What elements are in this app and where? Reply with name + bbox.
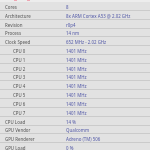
staticText: CPU 3 bbox=[13, 74, 26, 80]
button[interactable]: CPU Load bbox=[0, 117, 150, 126]
staticText: 1401 MHz bbox=[66, 66, 87, 72]
button[interactable]: CPU 3 bbox=[0, 72, 150, 81]
staticText: Adreno (TM) 506 bbox=[66, 136, 101, 142]
button[interactable]: Revision bbox=[0, 20, 150, 29]
staticText: 14 % bbox=[66, 119, 76, 125]
staticText: Qualcomm bbox=[66, 127, 90, 133]
button[interactable]: Process bbox=[0, 28, 150, 37]
staticText: 1401 MHz bbox=[66, 110, 87, 116]
staticText: CPU 2 bbox=[13, 66, 26, 72]
button[interactable]: CPU 2 bbox=[0, 64, 150, 73]
button[interactable]: CPU 6 bbox=[0, 99, 150, 108]
staticText: 1401 MHz bbox=[66, 83, 87, 89]
button[interactable]: GPU Load bbox=[0, 143, 150, 150]
button[interactable]: GPU Renderer bbox=[0, 134, 150, 143]
staticText: GPU Vendor bbox=[5, 127, 31, 133]
button[interactable]: Architecture bbox=[0, 11, 150, 20]
staticText: 652 MHz - 2.02 GHz bbox=[66, 39, 107, 45]
staticText: Clock Speed bbox=[5, 39, 31, 45]
staticText: r0p4 bbox=[66, 22, 76, 28]
staticText: GPU Renderer bbox=[5, 136, 35, 142]
staticText: CPU 6 bbox=[13, 101, 26, 107]
button[interactable]: CPU 0 bbox=[0, 46, 150, 55]
staticText: 14 nm bbox=[66, 30, 80, 36]
button[interactable]: CPU 4 bbox=[0, 81, 150, 90]
button[interactable]: Clock Speed bbox=[0, 37, 150, 46]
staticText: Process bbox=[5, 30, 22, 36]
button[interactable]: GPU Vendor bbox=[0, 125, 150, 134]
staticText: CPU Load bbox=[5, 119, 26, 125]
staticText: 8x ARM Cortex A53 @ 2.02 GHz bbox=[66, 13, 131, 19]
button[interactable]: Cores bbox=[0, 2, 150, 11]
staticText: 0 % bbox=[66, 145, 74, 150]
staticText: 1401 MHz bbox=[66, 101, 87, 107]
staticText: 1401 MHz bbox=[66, 74, 87, 80]
staticText: CPU 1 bbox=[13, 57, 26, 63]
staticText: Revision bbox=[5, 22, 23, 28]
staticText: CPU 7 bbox=[13, 110, 26, 116]
staticText: 1401 MHz bbox=[66, 92, 87, 98]
staticText: CPU 4 bbox=[13, 83, 26, 89]
button[interactable]: CPU 5 bbox=[0, 90, 150, 99]
staticText: GPU Load bbox=[5, 145, 26, 150]
button[interactable]: CPU 1 bbox=[0, 55, 150, 64]
staticText: 1401 MHz bbox=[66, 48, 87, 54]
staticText: 1401 MHz bbox=[66, 57, 87, 63]
staticText: CPU 5 bbox=[13, 92, 26, 98]
staticText: Architecture bbox=[5, 13, 31, 19]
button[interactable]: CPU 7 bbox=[0, 108, 150, 117]
staticText: 8 bbox=[66, 4, 69, 10]
staticText: CPU 0 bbox=[13, 48, 26, 54]
staticText: Cores bbox=[5, 4, 17, 10]
